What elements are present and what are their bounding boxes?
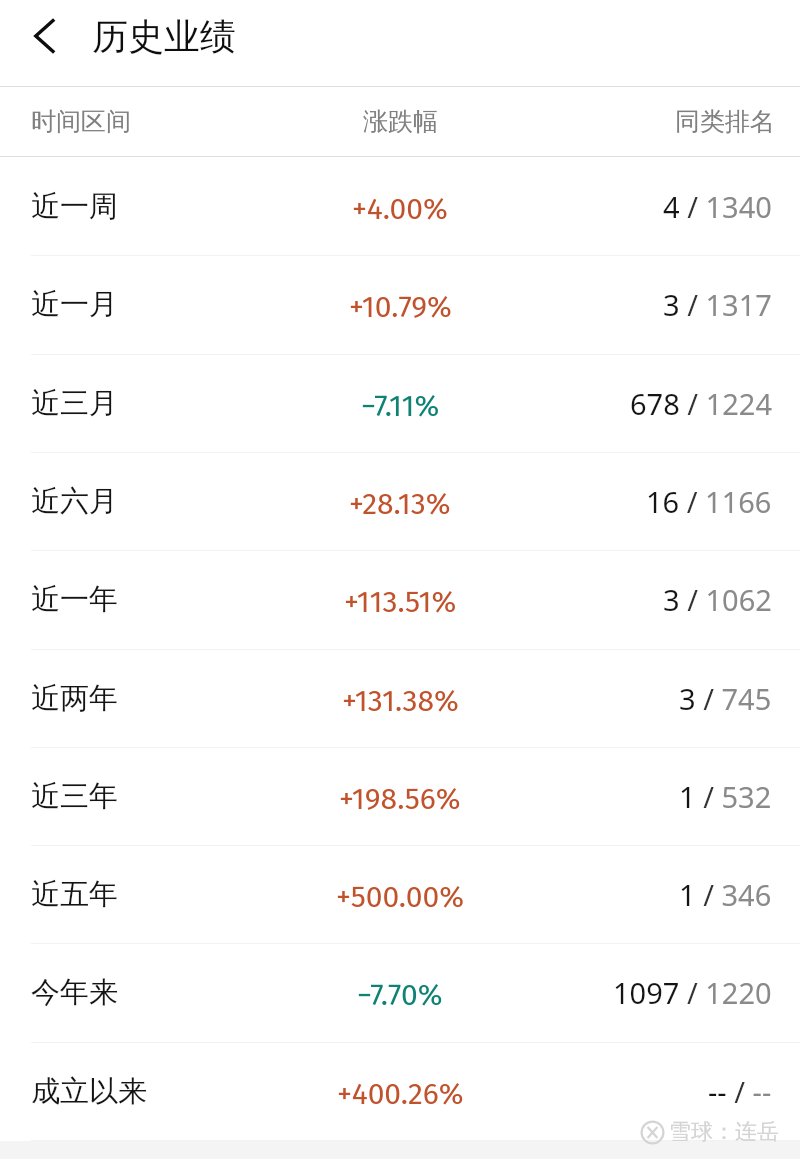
staticText: 近两年 — [31, 680, 118, 717]
staticText: 16 / 1166 — [646, 482, 772, 521]
staticText: 历史业绩 — [92, 14, 236, 59]
button[interactable]: Back — [0, 0, 72, 72]
staticText: −7.11% — [361, 388, 440, 424]
staticText: 雪球：连岳 — [669, 1118, 779, 1146]
button[interactable]: 近三年 — [0, 747, 800, 845]
button[interactable]: 近一周 — [0, 157, 800, 255]
staticText: 3 / 745 — [679, 679, 772, 718]
staticText: 近一年 — [31, 581, 118, 618]
staticText: 近三年 — [31, 778, 118, 815]
staticText: +113.51% — [344, 584, 457, 620]
staticText: 4 / 1340 — [663, 187, 772, 226]
staticText: +131.38% — [342, 683, 459, 719]
staticText: +4.00% — [352, 191, 448, 227]
staticText: 1097 / 1220 — [613, 973, 772, 1012]
staticText: 今年来 — [31, 974, 118, 1011]
button[interactable]: 今年来 — [0, 943, 800, 1041]
staticText: +28.13% — [349, 486, 451, 522]
staticText: +500.00% — [336, 879, 464, 915]
button[interactable]: 近两年 — [0, 649, 800, 747]
staticText: 3 / 1317 — [663, 285, 772, 324]
staticText: +198.56% — [339, 781, 461, 817]
button[interactable]: 近一年 — [0, 550, 800, 648]
staticText: 1 / 346 — [679, 875, 772, 914]
staticText: 近六月 — [31, 483, 118, 520]
button[interactable]: 近五年 — [0, 845, 800, 943]
staticText: 同类排名 — [675, 106, 775, 137]
staticText: 涨跌幅 — [363, 106, 438, 137]
staticText: +400.26% — [337, 1076, 464, 1112]
staticText: 1 / 532 — [679, 777, 772, 816]
staticText: +10.79% — [349, 289, 452, 325]
staticText: 近一周 — [31, 188, 118, 225]
staticText: 时间区间 — [31, 106, 131, 137]
staticText: 近三月 — [31, 385, 118, 422]
button[interactable]: 近六月 — [0, 452, 800, 550]
button[interactable]: 近一月 — [0, 255, 800, 353]
button[interactable]: 成立以来 — [0, 1042, 800, 1140]
staticText: 3 / 1062 — [663, 580, 772, 619]
staticText: 678 / 1224 — [630, 384, 772, 423]
staticText: 近五年 — [31, 876, 118, 913]
staticText: 成立以来 — [31, 1073, 147, 1110]
staticText: −7.70% — [357, 977, 443, 1013]
button[interactable]: 近三月 — [0, 354, 800, 452]
staticText: -- / -- — [708, 1072, 772, 1111]
staticText: 近一月 — [31, 286, 118, 323]
